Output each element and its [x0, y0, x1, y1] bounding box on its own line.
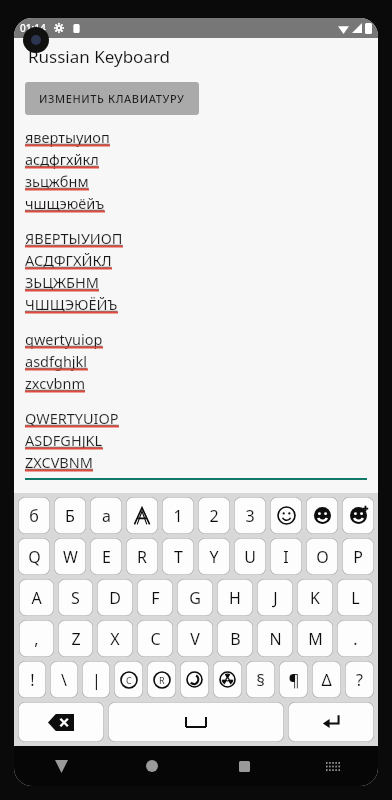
staticText: Q — [28, 546, 41, 568]
button[interactable]: Space — [108, 702, 284, 742]
button[interactable]: S — [58, 579, 93, 616]
button[interactable]: б — [18, 497, 50, 534]
staticText: M — [308, 628, 323, 650]
staticText: QWERTYUIOP — [25, 408, 119, 428]
button[interactable]: O — [306, 538, 338, 575]
staticText: явертыуиоп — [25, 127, 110, 147]
staticText: T — [174, 546, 183, 568]
button[interactable]: Enter — [288, 702, 374, 742]
staticText: ! — [30, 669, 35, 691]
button[interactable]: V — [177, 620, 213, 657]
staticText: § — [256, 668, 265, 691]
staticText: zxcvbnm — [25, 373, 85, 393]
button[interactable]: § — [246, 661, 275, 698]
button[interactable]: Y — [198, 538, 230, 575]
button[interactable] — [180, 661, 209, 698]
button[interactable]: Δ — [312, 661, 341, 698]
staticText: asdfghjkl — [25, 351, 88, 371]
button[interactable]: , — [19, 620, 54, 657]
button[interactable]: L — [337, 579, 373, 616]
staticText: R — [159, 674, 165, 686]
button[interactable]: U — [234, 538, 266, 575]
staticText: D — [109, 587, 121, 609]
staticText: Russian Keyboard — [28, 45, 171, 68]
button[interactable]: R — [126, 538, 158, 575]
staticText: Б — [65, 505, 75, 527]
staticText: Δ — [321, 669, 332, 691]
staticText: K — [310, 587, 320, 609]
button[interactable]: X — [97, 620, 133, 657]
button[interactable]: . — [337, 620, 373, 657]
staticText: H — [229, 587, 241, 609]
button[interactable] — [306, 497, 338, 534]
button[interactable]: | — [82, 661, 110, 698]
button[interactable]: B — [217, 620, 253, 657]
staticText: ZXCVBNM — [25, 452, 93, 472]
staticText: O — [316, 546, 329, 568]
staticText: ЯВЕРТЫУИОП — [25, 228, 123, 248]
button[interactable]: E — [90, 538, 122, 575]
button[interactable]: F — [137, 579, 173, 616]
button[interactable]: Backspace — [18, 702, 104, 742]
button[interactable]: M — [297, 620, 333, 657]
button[interactable]: Recents — [225, 747, 263, 785]
staticText: W — [63, 546, 78, 568]
button[interactable]: W — [54, 538, 86, 575]
button[interactable]: 3 — [234, 497, 266, 534]
button[interactable]: C — [114, 661, 143, 698]
button[interactable]: C — [137, 620, 173, 657]
button[interactable]: R — [147, 661, 176, 698]
button[interactable]: H — [217, 579, 253, 616]
button[interactable]: а — [90, 497, 122, 534]
button[interactable] — [126, 497, 158, 534]
staticText: \ — [61, 669, 67, 691]
staticText: ¶ — [288, 668, 300, 691]
button[interactable] — [213, 661, 242, 698]
button[interactable]: I — [270, 538, 302, 575]
button[interactable]: Hide keyboard — [42, 747, 80, 785]
staticText: ЧШЩЭЮЁЙЪ — [25, 294, 118, 314]
button[interactable]: 1 — [162, 497, 194, 534]
staticText: АСДФГХЙКЛ — [25, 250, 112, 270]
button[interactable]: \ — [50, 661, 78, 698]
button[interactable]: Switch keyboard — [316, 749, 350, 783]
staticText: а — [102, 505, 111, 527]
button[interactable]: 2 — [198, 497, 230, 534]
button[interactable]: Q — [18, 538, 50, 575]
button[interactable] — [342, 497, 374, 534]
staticText: I — [283, 546, 289, 568]
staticText: F — [151, 587, 160, 609]
staticText: C — [126, 674, 132, 686]
button[interactable]: G — [177, 579, 213, 616]
staticText: асдфгхйкл — [25, 149, 99, 169]
staticText: G — [189, 587, 201, 609]
staticText: C — [150, 628, 161, 650]
staticText: ЗЬЦЖБНМ — [25, 272, 99, 292]
button[interactable]: ¶ — [279, 661, 308, 698]
staticText: ? — [356, 669, 363, 691]
staticText: зьцжбнм — [25, 171, 89, 191]
staticText: N — [269, 628, 282, 650]
button[interactable]: A — [19, 579, 54, 616]
staticText: Z — [71, 628, 81, 650]
button[interactable]: T — [162, 538, 194, 575]
staticText: ASDFGHJKL — [25, 430, 103, 450]
button[interactable]: J — [257, 579, 293, 616]
button[interactable]: P — [342, 538, 374, 575]
staticText: 2 — [209, 505, 219, 527]
button[interactable] — [270, 497, 302, 534]
staticText: 01:14 — [20, 21, 46, 35]
staticText: J — [273, 587, 278, 609]
button[interactable]: ! — [18, 661, 46, 698]
button[interactable]: D — [97, 579, 133, 616]
staticText: P — [353, 546, 363, 568]
staticText: X — [110, 628, 120, 650]
button[interactable]: K — [297, 579, 333, 616]
button[interactable]: Z — [58, 620, 93, 657]
button[interactable]: Home — [133, 747, 171, 785]
button[interactable]: N — [257, 620, 293, 657]
button[interactable]: ИЗМЕНИТЬ КЛАВИАТУРУ — [25, 82, 199, 115]
button[interactable]: Б — [54, 497, 86, 534]
button[interactable]: ? — [345, 661, 374, 698]
staticText: 1 — [173, 505, 183, 527]
